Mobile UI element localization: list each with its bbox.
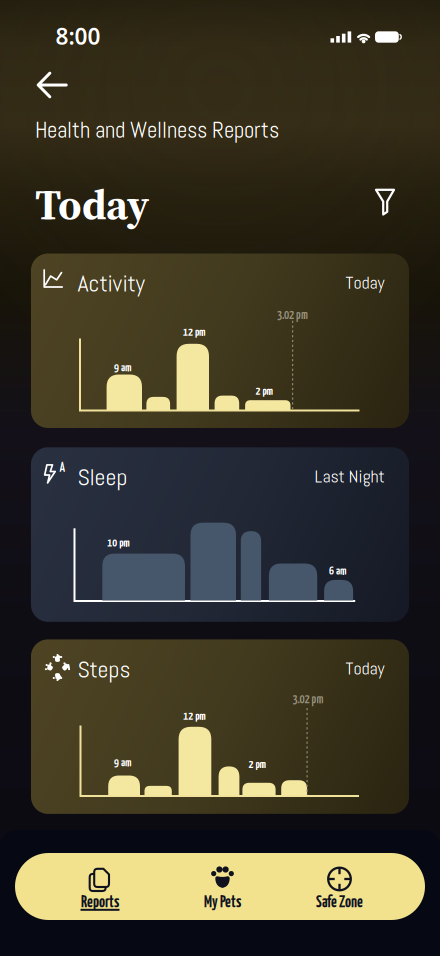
staticText: Activity	[77, 268, 144, 299]
staticText: 12 pm	[183, 327, 206, 338]
staticText: Steps	[77, 654, 130, 684]
staticText: Reports	[81, 895, 119, 911]
staticText: 8:00	[55, 21, 100, 51]
staticText: Today	[345, 271, 384, 294]
staticText: 6 am	[329, 566, 347, 577]
staticText: 2 pm	[255, 386, 273, 397]
button[interactable]: Reports	[69, 860, 131, 916]
staticText: 9 am	[114, 757, 132, 769]
button[interactable]: Activity	[31, 253, 409, 428]
staticText: Sleep	[77, 462, 127, 492]
button[interactable]: My Pets	[191, 860, 253, 916]
staticText: 12 pm	[183, 711, 206, 722]
staticText: Last Night	[314, 465, 384, 488]
button[interactable]	[30, 65, 74, 105]
staticText: Health and Wellness Reports	[35, 115, 279, 144]
staticText: 9 am	[114, 362, 132, 374]
staticText: Today	[35, 175, 149, 233]
button[interactable]	[368, 181, 404, 223]
button[interactable]: Steps	[31, 639, 409, 814]
staticText: 10 pm	[107, 537, 130, 549]
staticText: A	[59, 462, 65, 474]
staticText: My Pets	[204, 895, 241, 911]
button[interactable]: Safe Zone	[308, 860, 370, 916]
staticText: 3.02 pm	[277, 310, 308, 321]
button[interactable]: A	[31, 447, 409, 622]
staticText: Safe Zone	[316, 895, 363, 911]
staticText: 3.02 pm	[293, 694, 324, 706]
staticText: Today	[345, 657, 384, 680]
staticText: 2 pm	[248, 759, 266, 770]
